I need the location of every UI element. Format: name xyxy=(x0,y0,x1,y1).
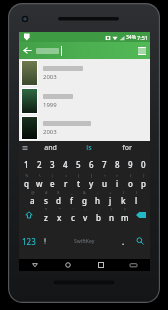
staticText: c xyxy=(71,212,75,223)
button[interactable]: Recent apps xyxy=(84,259,117,271)
staticText: + xyxy=(109,190,112,195)
button[interactable]: 5 xyxy=(72,155,85,172)
button[interactable]: Hide keyboard xyxy=(117,259,150,271)
button[interactable]: View mode xyxy=(133,42,150,59)
staticText: * xyxy=(45,207,48,212)
button[interactable]: 2003 xyxy=(21,59,150,87)
button[interactable]: ? xyxy=(118,206,131,223)
button[interactable]: and xyxy=(31,141,70,155)
staticText: ) xyxy=(136,190,138,195)
button[interactable]: # xyxy=(39,189,52,206)
staticText: { xyxy=(130,173,132,178)
staticText: a xyxy=(30,195,35,206)
button[interactable]: 8 xyxy=(111,155,124,172)
button[interactable]: { xyxy=(124,172,137,189)
staticText: 1999 xyxy=(43,101,57,109)
button[interactable]: - xyxy=(91,189,104,206)
staticText: " xyxy=(59,207,61,212)
button[interactable]: 4 xyxy=(59,155,72,172)
button[interactable]: 3 xyxy=(46,155,59,172)
staticText: j xyxy=(109,195,112,206)
staticText: ? xyxy=(124,207,126,212)
staticText: s xyxy=(44,195,48,206)
button[interactable]: Shift xyxy=(19,206,39,223)
button[interactable]: | xyxy=(46,172,59,189)
staticText: w xyxy=(36,178,43,189)
button[interactable]: ] xyxy=(85,172,98,189)
staticText: & xyxy=(83,190,86,195)
button[interactable]: 0 xyxy=(137,155,150,172)
button[interactable]: Search xyxy=(130,223,150,259)
button[interactable]: Home xyxy=(51,259,84,271)
staticText: . xyxy=(122,236,125,247)
staticText: 2 xyxy=(37,159,42,170)
button[interactable]: 1 xyxy=(19,155,33,172)
staticText: \ xyxy=(39,173,41,178)
button[interactable]: = xyxy=(59,172,72,189)
staticText: 1 xyxy=(24,159,29,170)
staticText: q xyxy=(24,178,29,189)
button[interactable]: ) xyxy=(130,189,143,206)
staticText: y xyxy=(89,178,94,189)
button[interactable]: } xyxy=(137,172,150,189)
button[interactable]: ; xyxy=(92,206,105,223)
button[interactable]: Keyboard menu xyxy=(19,141,31,155)
button[interactable]: & xyxy=(78,189,91,206)
button[interactable]: Space xyxy=(51,223,117,259)
staticText: # xyxy=(45,190,48,195)
staticText: h xyxy=(95,195,101,206)
button[interactable]: 9 xyxy=(124,155,137,172)
button[interactable]: \ xyxy=(33,172,46,189)
staticText: 9 xyxy=(128,159,133,170)
button[interactable]: : xyxy=(79,206,92,223)
button[interactable]: @ xyxy=(26,189,39,206)
staticText: ! xyxy=(111,207,113,212)
button[interactable]: ' xyxy=(66,206,79,223)
button[interactable]: % xyxy=(19,172,33,189)
button[interactable]: _ xyxy=(65,189,78,206)
staticText: for xyxy=(122,143,132,153)
button[interactable]: 2003 xyxy=(21,115,150,141)
staticText: < xyxy=(104,173,107,178)
staticText: - xyxy=(97,190,99,195)
button[interactable]: 123 xyxy=(19,223,38,259)
button[interactable]: Backspace xyxy=(131,206,150,223)
staticText: z xyxy=(44,212,48,223)
staticText: l xyxy=(135,195,138,206)
staticText: 123 xyxy=(22,236,36,247)
button[interactable]: > xyxy=(111,172,124,189)
button[interactable]: Back xyxy=(19,259,51,271)
button[interactable]: < xyxy=(98,172,111,189)
button[interactable]: is xyxy=(70,141,108,155)
staticText: ] xyxy=(91,173,93,178)
staticText: 5 xyxy=(76,159,81,170)
staticText: ' xyxy=(73,207,74,212)
button[interactable]: + xyxy=(104,189,117,206)
staticText: d xyxy=(56,195,61,206)
staticText: t xyxy=(77,178,81,189)
button[interactable]: ! xyxy=(105,206,118,223)
button[interactable]: Back xyxy=(19,42,36,59)
button[interactable]: . xyxy=(117,223,130,259)
button[interactable]: $ xyxy=(52,189,65,206)
staticText: m xyxy=(121,212,129,223)
button[interactable]: * xyxy=(39,206,53,223)
staticText: @ xyxy=(31,190,35,195)
button[interactable]: for xyxy=(108,141,146,155)
button[interactable]: 1999 xyxy=(21,87,150,115)
button[interactable]: 6 xyxy=(85,155,98,172)
button[interactable] xyxy=(36,42,133,59)
staticText: is xyxy=(86,143,92,153)
button[interactable]: [ xyxy=(72,172,85,189)
staticText: SwiftKey xyxy=(74,238,95,245)
button[interactable]: 7 xyxy=(98,155,111,172)
button[interactable]: ( xyxy=(117,189,130,206)
button[interactable]: " xyxy=(53,206,66,223)
button[interactable]: Voice input xyxy=(38,223,51,259)
staticText: k xyxy=(121,195,126,206)
staticText: and xyxy=(44,143,57,153)
staticText: 0 xyxy=(141,159,146,170)
button[interactable]: 2 xyxy=(33,155,46,172)
staticText: % xyxy=(25,173,29,178)
staticText: | xyxy=(51,173,54,178)
